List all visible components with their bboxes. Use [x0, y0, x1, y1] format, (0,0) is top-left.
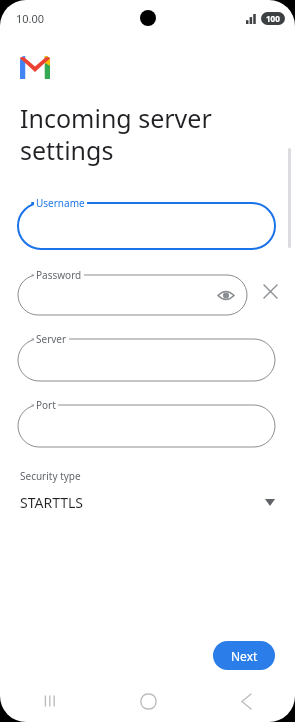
staticText: Next: [231, 648, 258, 664]
staticText: Username: [36, 196, 85, 210]
staticText: 100: [266, 13, 280, 24]
button[interactable]: Clear password: [255, 276, 285, 306]
button[interactable]: Show password: [211, 280, 241, 310]
staticText: Port: [36, 398, 56, 412]
button[interactable]: Port: [18, 397, 275, 447]
button[interactable]: Next: [213, 641, 275, 670]
staticText: Password: [36, 268, 82, 282]
staticText: 10.00: [16, 11, 45, 26]
button[interactable]: Home: [99, 680, 197, 722]
staticText: Server: [36, 332, 67, 346]
staticText: Security type: [20, 469, 81, 483]
button[interactable]: Security type: [0, 469, 295, 512]
button[interactable]: Recent apps: [0, 680, 99, 722]
button[interactable]: Back: [197, 680, 295, 722]
button[interactable]: Username: [18, 195, 275, 249]
button[interactable]: Server: [18, 331, 275, 381]
staticText: Incoming server settings: [20, 101, 212, 167]
button[interactable]: Password: [18, 267, 247, 315]
staticText: STARTTLS: [20, 493, 265, 512]
